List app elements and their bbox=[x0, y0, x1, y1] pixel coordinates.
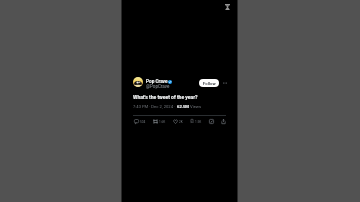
button[interactable]: Follow bbox=[199, 79, 219, 87]
staticText: Views bbox=[189, 104, 202, 109]
staticText: 62.5M bbox=[177, 104, 189, 109]
staticText: Follow bbox=[203, 81, 216, 86]
staticText: 7:43 PM · Dec 2, 2024 · bbox=[133, 104, 177, 109]
button[interactable]: Reply bbox=[134, 119, 146, 124]
button[interactable] bbox=[133, 77, 143, 87]
staticText: 504 bbox=[140, 120, 146, 124]
staticText: What's the tweet of the year? bbox=[133, 94, 198, 100]
button[interactable]: Repost bbox=[153, 119, 166, 124]
button[interactable]: More options bbox=[221, 79, 229, 87]
button[interactable]: Bookmark bbox=[190, 119, 202, 124]
button[interactable]: Grok bbox=[209, 119, 214, 124]
button[interactable]: Share bbox=[221, 119, 226, 124]
staticText: Pop Crave bbox=[146, 79, 168, 85]
staticText: 1.6K bbox=[159, 120, 166, 124]
staticText: @PopCrave bbox=[146, 84, 170, 89]
staticText: 1.5K bbox=[195, 120, 202, 124]
button[interactable]: Playback settings bbox=[222, 1, 233, 12]
button[interactable]: Like bbox=[173, 119, 183, 124]
staticText: 2K bbox=[179, 120, 183, 124]
